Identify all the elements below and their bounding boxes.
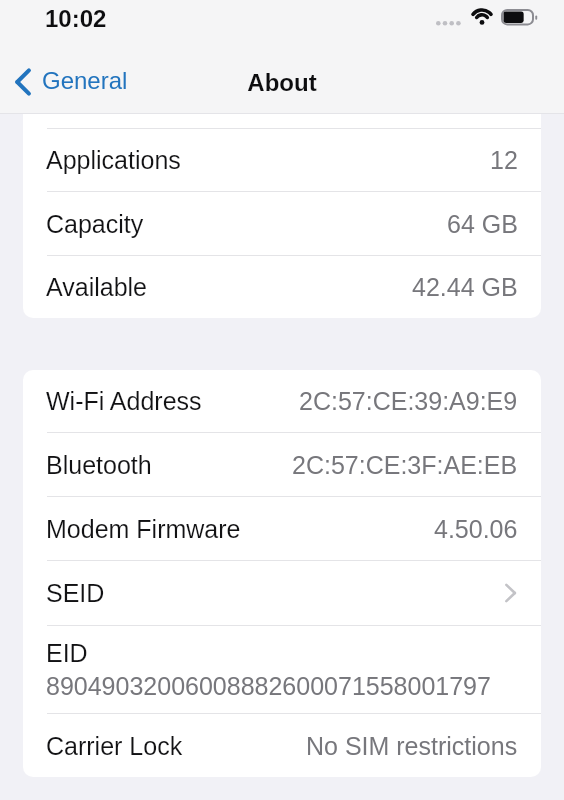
staticText: EID <box>46 639 88 667</box>
staticText: Modem Firmware <box>46 515 241 543</box>
staticText: Carrier Lock <box>46 732 183 760</box>
staticText: 2C:57:CE:39:A9:E9 <box>299 387 518 415</box>
staticText: 42.44 GB <box>412 273 518 301</box>
staticText: 12 <box>490 146 518 174</box>
button[interactable]: Modem Firmware <box>23 497 541 560</box>
staticText: Applications <box>46 146 181 174</box>
staticText: About <box>247 69 317 96</box>
staticText: 64 GB <box>447 210 518 238</box>
button[interactable]: Capacity <box>23 192 541 255</box>
staticText: SEID <box>46 579 105 607</box>
staticText: 89049032006008882600071558001797 <box>46 672 491 700</box>
staticText: Wi-Fi Address <box>46 387 202 415</box>
button[interactable]: Applications <box>23 129 541 191</box>
staticText: Available <box>46 273 148 301</box>
button[interactable]: Wi-Fi Address <box>23 370 541 432</box>
staticText: 10:02 <box>45 5 107 32</box>
staticText: Bluetooth <box>46 451 152 479</box>
staticText: 4.50.06 <box>434 515 518 543</box>
button[interactable]: Available <box>23 256 541 318</box>
staticText: General <box>42 67 128 94</box>
button[interactable]: Back to General <box>0 54 138 106</box>
staticText: 2C:57:CE:3F:AE:EB <box>292 451 518 479</box>
staticText: Capacity <box>46 210 144 238</box>
button[interactable]: Carrier Lock <box>23 714 541 777</box>
button[interactable]: EID <box>23 626 541 713</box>
staticText: No SIM restrictions <box>306 732 518 760</box>
button[interactable]: Bluetooth <box>23 433 541 496</box>
button[interactable]: SEID <box>23 561 541 625</box>
other: Back to General <box>15 69 31 95</box>
